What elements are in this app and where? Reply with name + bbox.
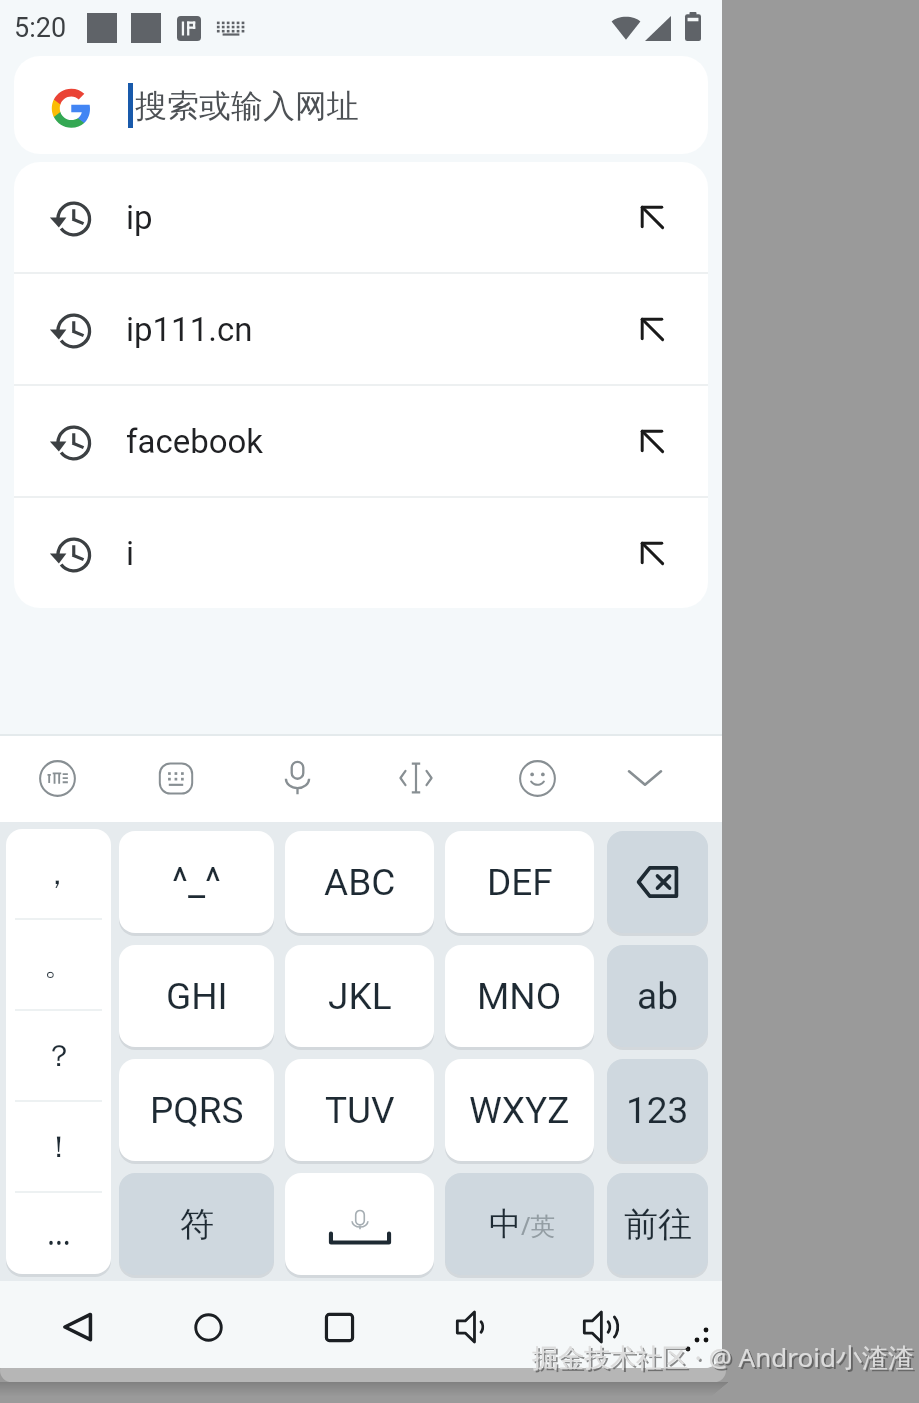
staticText: 中: [489, 1204, 521, 1244]
other: Use this suggestion: [638, 203, 666, 231]
button[interactable]: Recent apps: [303, 1291, 375, 1363]
staticText: 掘金技术社区 · @ Android小渣渣: [534, 1341, 916, 1377]
staticText: 符: [180, 1203, 214, 1246]
staticText: ^_^: [172, 860, 221, 905]
staticText: /英: [521, 1208, 556, 1242]
button[interactable]: Keyboard layout: [142, 744, 210, 812]
other: Use this suggestion: [638, 315, 666, 343]
button[interactable]: Input method: [23, 744, 91, 812]
staticText: 掘金技术社区 · @ Android小渣渣: [532, 1339, 914, 1375]
staticText: GHI: [166, 975, 228, 1018]
staticText: PQRS: [150, 1089, 244, 1132]
button[interactable]: 符: [119, 1173, 274, 1275]
button[interactable]: 。: [6, 920, 111, 1009]
button[interactable]: 搜索或输入网址: [14, 56, 708, 154]
staticText: ABC: [324, 861, 396, 904]
staticText: …: [47, 1213, 71, 1254]
button[interactable]: MNO: [445, 945, 594, 1047]
button[interactable]: PQRS: [119, 1059, 274, 1161]
button[interactable]: ！: [6, 1102, 111, 1191]
staticText: TUV: [325, 1089, 395, 1132]
button[interactable]: i: [14, 498, 708, 608]
button[interactable]: TUV: [285, 1059, 434, 1161]
staticText: ab: [637, 975, 678, 1018]
button[interactable]: JKL: [285, 945, 434, 1047]
button[interactable]: WXYZ: [445, 1059, 594, 1161]
button[interactable]: 中: [445, 1173, 594, 1275]
button[interactable]: ^_^: [119, 831, 274, 933]
button[interactable]: 前往: [607, 1173, 708, 1275]
staticText: ，: [42, 855, 72, 893]
button[interactable]: DEF: [445, 831, 594, 933]
button[interactable]: facebook: [14, 386, 708, 496]
button[interactable]: ABC: [285, 831, 434, 933]
staticText: 5:20: [14, 12, 67, 44]
button[interactable]: ？: [6, 1011, 111, 1100]
other: Use this suggestion: [638, 539, 666, 567]
button[interactable]: Voice input: [263, 744, 331, 812]
button[interactable]: ab: [607, 945, 708, 1047]
staticText: WXYZ: [469, 1089, 570, 1132]
staticText: ip111.cn: [126, 310, 253, 349]
button[interactable]: …: [6, 1193, 111, 1274]
button[interactable]: Home: [172, 1291, 244, 1363]
staticText: 123: [626, 1089, 689, 1132]
button[interactable]: Move cursor: [382, 744, 450, 812]
staticText: MNO: [477, 975, 562, 1018]
button[interactable]: Hide keyboard: [611, 744, 679, 812]
button[interactable]: Volume up: [567, 1291, 639, 1363]
staticText: 前往: [624, 1203, 692, 1246]
staticText: 搜索或输入网址: [135, 86, 359, 126]
button[interactable]: 123: [607, 1059, 708, 1161]
staticText: ？: [44, 1037, 74, 1075]
button[interactable]: ip111.cn: [14, 274, 708, 384]
staticText: 。: [44, 946, 74, 984]
button[interactable]: ip: [14, 162, 708, 272]
staticText: ！: [44, 1128, 74, 1166]
button[interactable]: ，: [6, 829, 111, 918]
staticText: JKL: [328, 975, 392, 1018]
button[interactable]: Backspace: [607, 831, 708, 933]
staticText: i: [126, 534, 135, 573]
staticText: ip: [126, 198, 153, 237]
staticText: facebook: [126, 422, 264, 461]
button[interactable]: Space, voice input: [285, 1173, 434, 1275]
staticText: DEF: [487, 861, 553, 904]
other: Use this suggestion: [638, 427, 666, 455]
button[interactable]: Back: [41, 1291, 113, 1363]
button[interactable]: Volume down: [436, 1291, 508, 1363]
button[interactable]: GHI: [119, 945, 274, 1047]
button[interactable]: Emoji: [503, 744, 571, 812]
